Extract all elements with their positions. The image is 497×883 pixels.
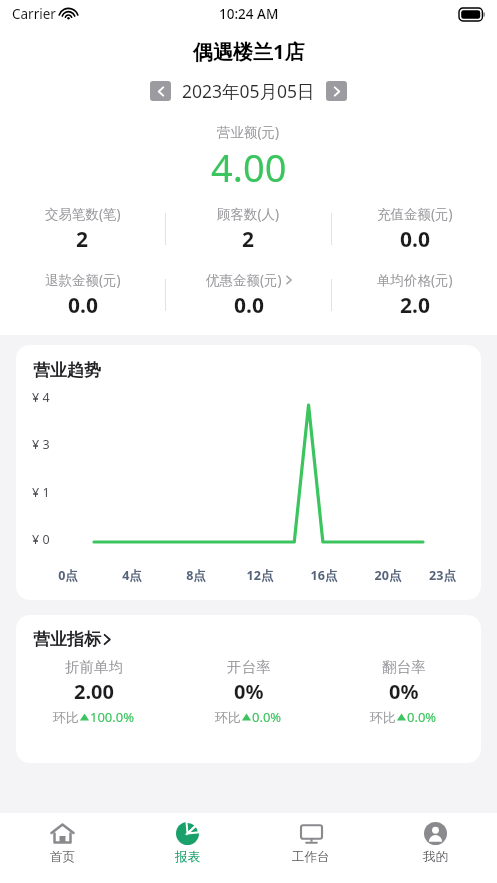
staticText: 23点 (420, 567, 465, 584)
staticText: 16点 (292, 567, 356, 584)
staticText: 0.0% (252, 708, 282, 726)
staticText: 我的 (423, 849, 448, 865)
staticText: 营业额(元) (217, 123, 280, 141)
staticText: ¥ 3 (32, 436, 50, 453)
staticText: 折前单均 (65, 658, 123, 676)
button[interactable]: 退款金额(元) (0, 271, 165, 320)
staticText: 2.00 (74, 678, 114, 705)
staticText: 顾客数(人) (217, 205, 280, 223)
staticText: 0.0% (407, 708, 437, 726)
staticText: 8点 (164, 567, 228, 584)
staticText: 退款金额(元) (45, 271, 121, 289)
staticText: ¥ 4 (32, 389, 50, 406)
button[interactable]: 营业指标 (33, 629, 111, 650)
staticText: 首页 (50, 849, 75, 865)
staticText: Carrier (12, 5, 56, 23)
staticText: 4点 (100, 567, 164, 584)
staticText: 充值金额(元) (377, 205, 453, 223)
staticText: 报表 (175, 849, 200, 865)
button[interactable]: 交易笔数(笔) (0, 205, 165, 254)
staticText: 12点 (228, 567, 292, 584)
staticText: 0.0 (68, 291, 98, 320)
staticText: 20点 (356, 567, 420, 584)
button[interactable]: 翻台率 (326, 658, 481, 726)
button[interactable]: 单均价格(元) (332, 271, 497, 320)
button[interactable]: 我的 (373, 821, 497, 865)
staticText: 营业指标 (33, 629, 101, 650)
staticText: 环比 (215, 709, 241, 725)
staticText: 100.0% (90, 708, 135, 726)
staticText: 0% (389, 678, 419, 705)
staticText: 交易笔数(笔) (45, 205, 121, 223)
staticText: 0.0 (234, 291, 264, 320)
button[interactable]: 折前单均 (16, 658, 171, 726)
staticText: 10:24 AM (219, 5, 279, 23)
button[interactable]: 充值金额(元) (332, 205, 497, 254)
staticText: 0点 (36, 567, 100, 584)
button[interactable]: 2023年05月05日 (182, 79, 315, 103)
staticText: 0.0 (400, 225, 430, 254)
staticText: 2 (242, 225, 255, 254)
staticText: 优惠金额(元) (206, 271, 282, 289)
staticText: 工作台 (292, 849, 330, 865)
staticText: ¥ 1 (32, 484, 50, 501)
staticText: 翻台率 (382, 658, 426, 676)
staticText: 开台率 (227, 658, 271, 676)
button[interactable]: 顾客数(人) (166, 205, 331, 254)
button[interactable]: 首页 (0, 821, 125, 865)
staticText: ¥ 0 (32, 531, 50, 548)
button[interactable]: 偶遇楼兰1店 (193, 38, 305, 65)
button[interactable]: 优惠金额(元) (166, 271, 331, 320)
staticText: 环比 (53, 709, 79, 725)
button[interactable]: 开台率 (171, 658, 326, 726)
staticText: 0% (234, 678, 264, 705)
staticText: 4.00 (211, 141, 287, 193)
staticText: 2.0 (400, 291, 430, 320)
button[interactable]: 工作台 (249, 821, 373, 865)
button[interactable]: 营业趋势 (16, 345, 481, 600)
button[interactable]: Next day (326, 81, 347, 101)
button[interactable]: Previous day (150, 81, 171, 101)
button[interactable]: 报表 (125, 821, 249, 865)
staticText: 单均价格(元) (377, 271, 453, 289)
staticText: 2 (76, 225, 89, 254)
staticText: 环比 (370, 709, 396, 725)
staticText: 营业趋势 (33, 360, 101, 381)
